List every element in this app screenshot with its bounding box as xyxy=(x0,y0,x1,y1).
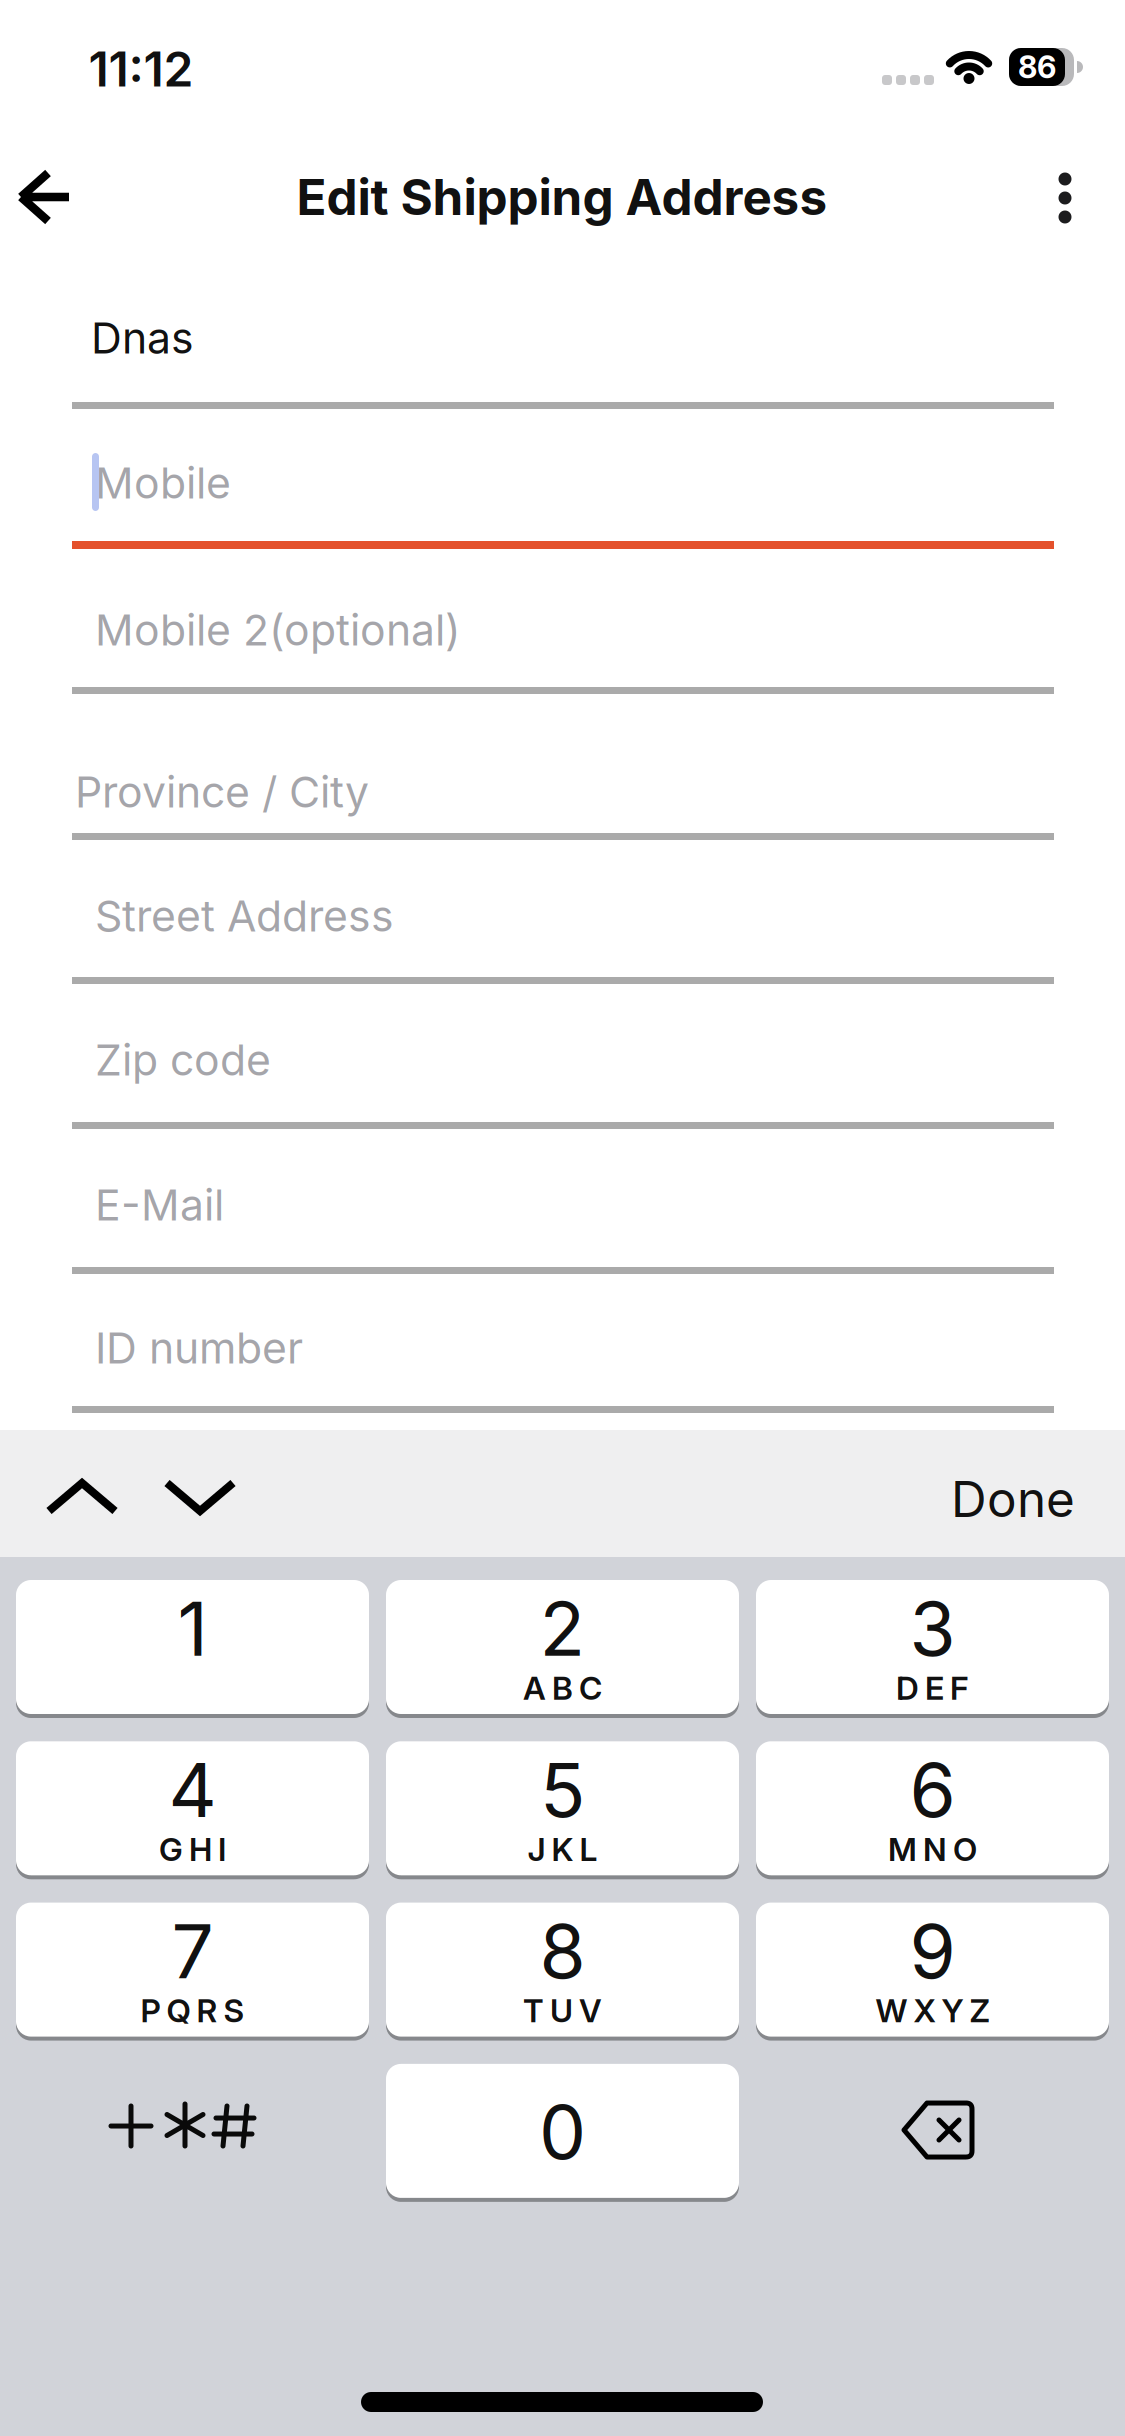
button[interactable]: 9 xyxy=(756,1903,1109,2037)
staticText: 9 xyxy=(909,1906,955,1996)
staticText: 2 xyxy=(539,1583,585,1674)
staticText: 6 xyxy=(909,1745,955,1835)
staticText: E-Mail xyxy=(95,1179,224,1231)
button[interactable]: Next field xyxy=(160,1467,240,1527)
staticText: Dnas xyxy=(91,312,194,364)
staticText: 3 xyxy=(909,1583,955,1674)
staticText: 7 xyxy=(171,1906,213,1996)
button[interactable]: Zip code xyxy=(72,1015,1054,1129)
button[interactable]: Street Address xyxy=(72,871,1054,984)
staticText: ID number xyxy=(95,1322,303,1374)
button[interactable]: 8 xyxy=(386,1903,739,2037)
staticText: 1 xyxy=(177,1583,207,1674)
staticText: 11:12 xyxy=(88,40,193,98)
button[interactable]: 5 xyxy=(386,1741,739,1875)
button[interactable]: 4 xyxy=(16,1741,369,1875)
button[interactable]: 0 xyxy=(386,2064,739,2198)
staticText: Province / City xyxy=(75,766,369,818)
staticText: 0 xyxy=(539,2087,586,2177)
button[interactable]: 1 xyxy=(16,1580,369,1714)
staticText: GHI xyxy=(159,1830,226,1869)
staticText: 4 xyxy=(168,1745,216,1835)
button[interactable]: E-Mail xyxy=(72,1160,1054,1274)
staticText: Zip code xyxy=(95,1034,271,1086)
staticText: PQRS xyxy=(140,1991,244,2030)
staticText: 86 xyxy=(1018,48,1056,85)
button[interactable]: More options xyxy=(1025,153,1105,243)
staticText: JKL xyxy=(527,1830,597,1869)
button[interactable]: 6 xyxy=(756,1741,1109,1875)
staticText: Edit Shipping Address xyxy=(296,167,827,227)
button[interactable]: Back xyxy=(0,147,95,247)
staticText: TUV xyxy=(523,1991,602,2030)
staticText: Done xyxy=(951,1469,1075,1529)
button[interactable]: 2 xyxy=(386,1580,739,1714)
button[interactable]: Mobile xyxy=(72,438,1054,549)
button[interactable]: Done xyxy=(775,1454,1075,1544)
staticText: Mobile 2(optional) xyxy=(95,604,461,656)
button[interactable]: 7 xyxy=(16,1903,369,2037)
button[interactable]: Previous field xyxy=(42,1467,122,1527)
staticText: DEF xyxy=(896,1669,969,1707)
staticText: 8 xyxy=(539,1906,585,1996)
button[interactable]: 3 xyxy=(756,1580,1109,1714)
staticText: WXYZ xyxy=(875,1991,989,2030)
button[interactable]: Province / City xyxy=(72,747,1054,840)
staticText: Street Address xyxy=(95,890,394,942)
button[interactable]: Dnas xyxy=(72,293,1054,409)
button[interactable]: ID number xyxy=(72,1303,1054,1413)
staticText: MNO xyxy=(888,1830,977,1869)
button[interactable]: Mobile 2(optional) xyxy=(72,585,1054,694)
staticText: ABC xyxy=(523,1669,602,1707)
button[interactable]: Delete xyxy=(897,2099,979,2161)
staticText: Mobile xyxy=(95,457,231,509)
button[interactable]: More symbols xyxy=(106,2096,260,2156)
staticText: 5 xyxy=(540,1745,585,1835)
